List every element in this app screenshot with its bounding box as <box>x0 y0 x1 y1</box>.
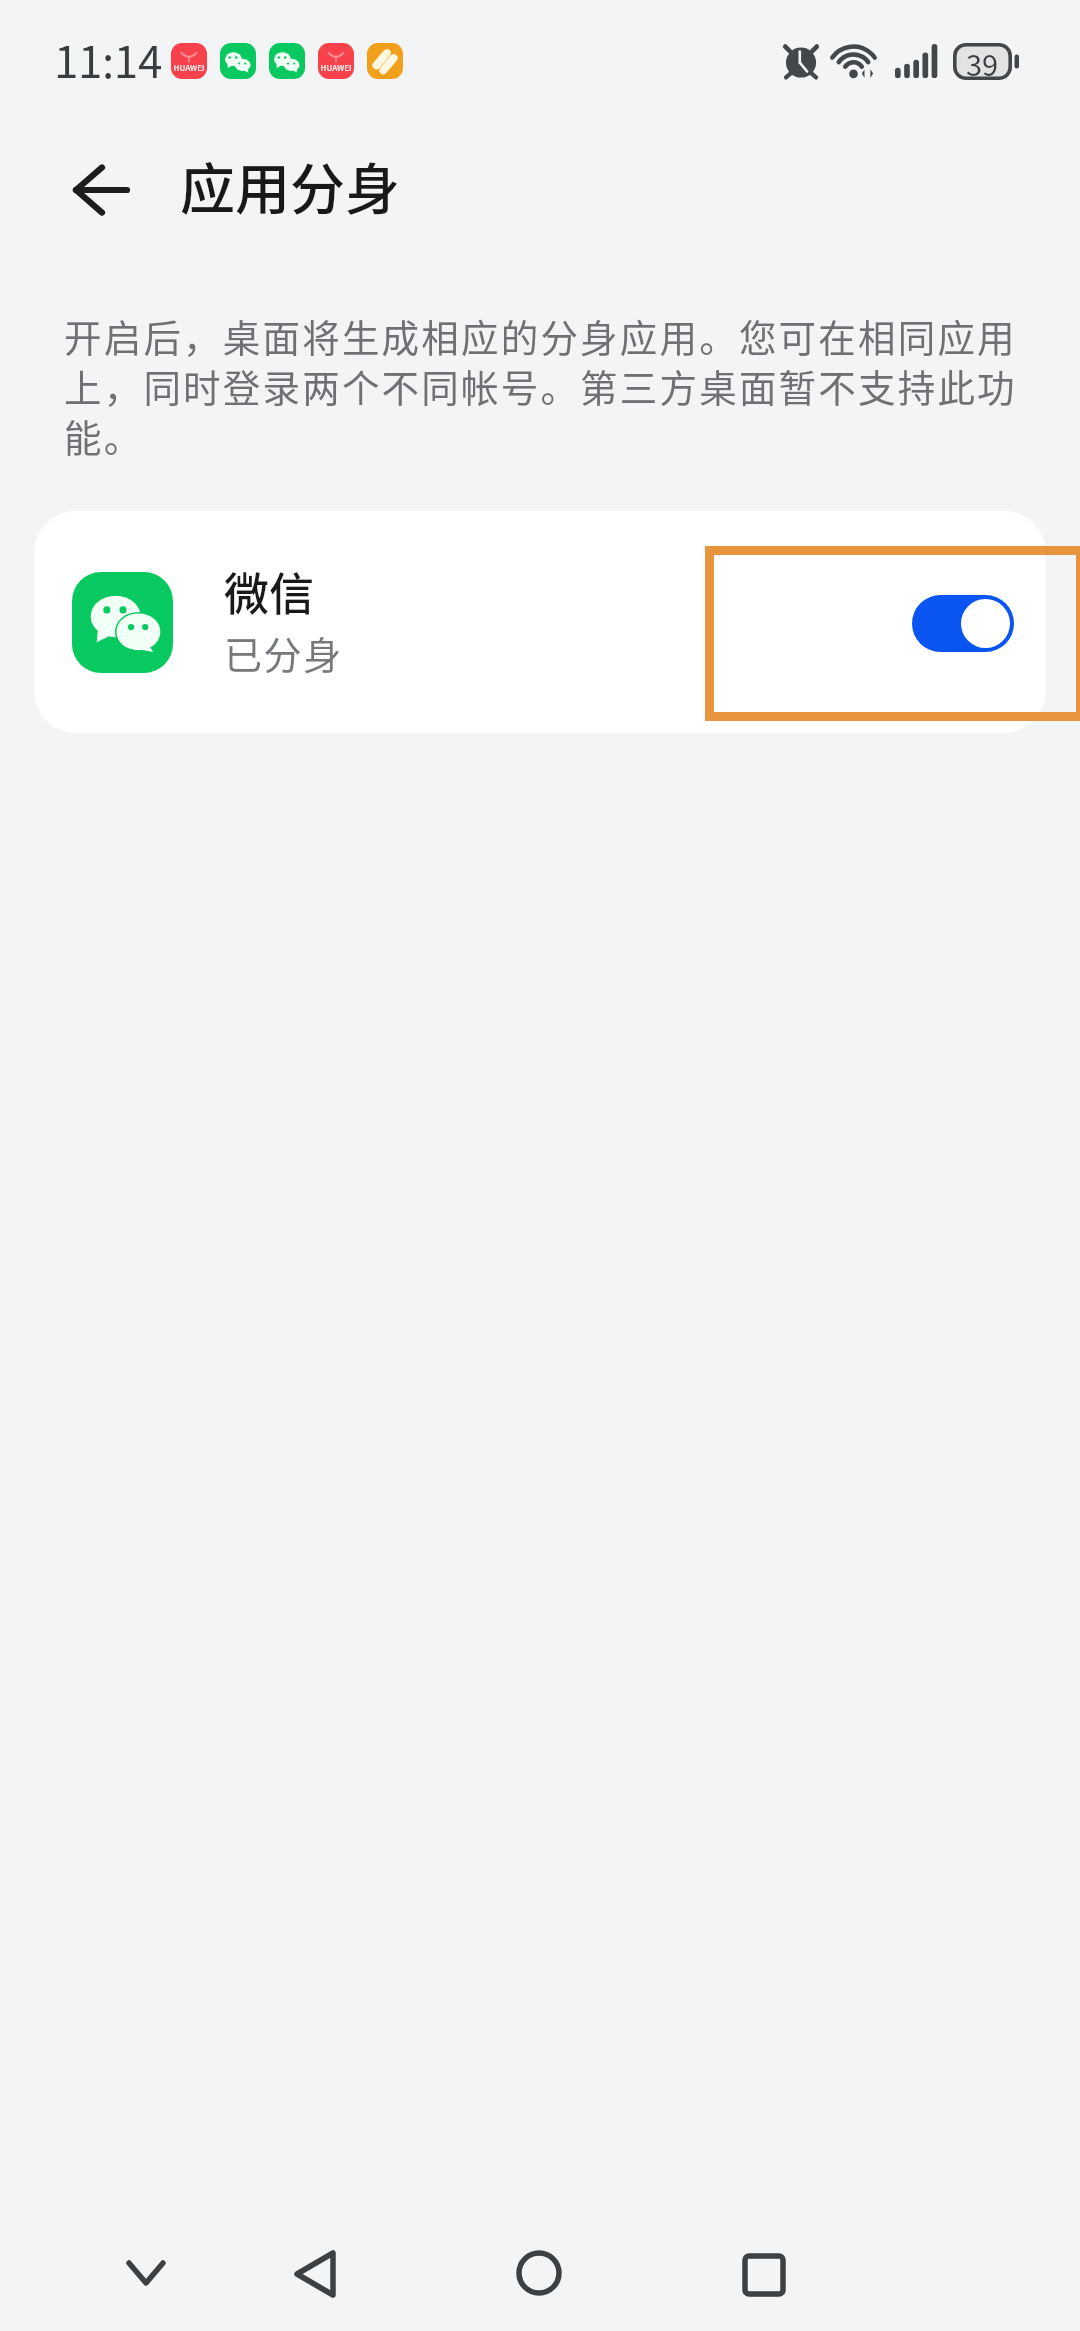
staticText: 39 <box>966 42 999 79</box>
button[interactable]: Hide keyboard <box>88 2215 204 2331</box>
button[interactable]: Back <box>257 2216 373 2331</box>
staticText: 微信 <box>224 559 315 624</box>
button[interactable]: Recents <box>706 2217 822 2331</box>
button[interactable]: 微信 <box>34 511 1046 733</box>
button[interactable]: App twin toggle <box>912 595 1014 652</box>
button[interactable]: Back <box>45 134 157 246</box>
button[interactable]: Home <box>481 2215 597 2331</box>
staticText: HUAWEI <box>173 62 205 74</box>
staticText: 11:14 <box>54 27 162 91</box>
staticText: 开启后，桌面将生成相应的分身应用。您可在相同应用上，同时登录两个不同帐号。第三方… <box>64 312 1036 462</box>
staticText: HUAWEI <box>320 62 352 74</box>
staticText: 应用分身 <box>180 145 401 225</box>
staticText: 已分身 <box>224 625 343 680</box>
